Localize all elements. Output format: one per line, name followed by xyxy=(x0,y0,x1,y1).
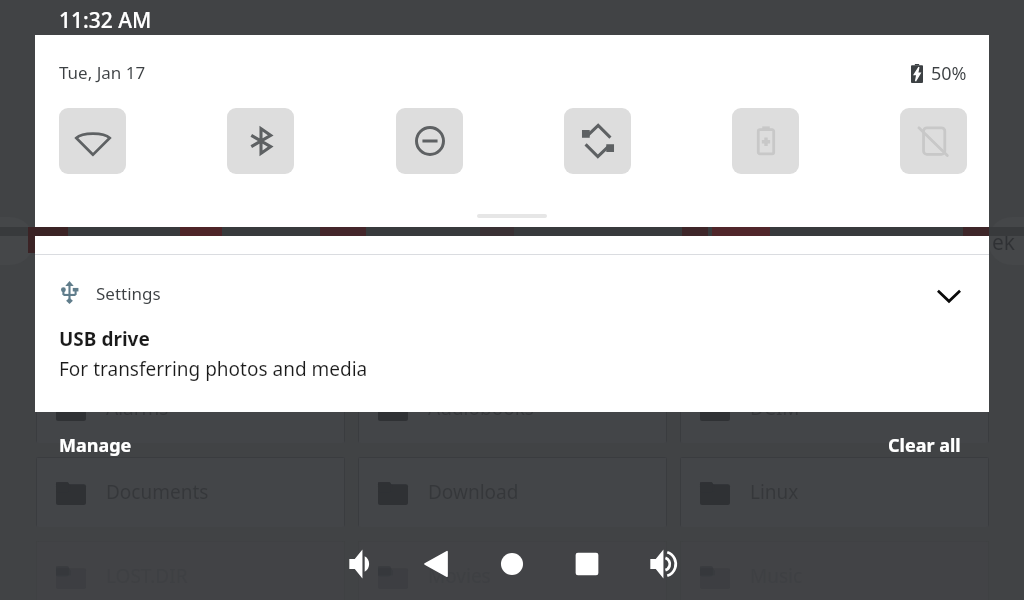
button[interactable]: Volume down xyxy=(337,540,385,588)
staticText: 50% xyxy=(931,61,967,86)
staticText: Movies xyxy=(428,563,491,589)
button[interactable]: Home xyxy=(488,540,536,588)
staticText: Manage xyxy=(59,433,132,458)
button[interactable]: Bluetooth xyxy=(227,108,294,174)
staticText: Clear all xyxy=(888,433,961,458)
button[interactable]: Documents xyxy=(36,457,345,527)
staticText: Download xyxy=(428,479,519,505)
staticText: Linux xyxy=(750,479,799,505)
button[interactable]: Rotation lock xyxy=(900,108,967,174)
button[interactable]: Volume up xyxy=(638,540,686,588)
staticText: Audiobooks xyxy=(428,395,534,421)
button[interactable]: Expand notification xyxy=(925,271,973,319)
button[interactable]: Battery Saver xyxy=(732,108,799,174)
staticText: For transferring photos and media xyxy=(59,356,368,382)
button[interactable]: Settings xyxy=(35,236,989,412)
staticText: DCIM xyxy=(750,395,800,421)
button[interactable]: Alarms xyxy=(36,373,345,443)
button[interactable]: Back xyxy=(412,540,460,588)
button[interactable]: Clear all xyxy=(872,426,977,464)
staticText: 11:32 AM xyxy=(59,6,152,35)
staticText: Settings xyxy=(96,282,161,305)
button[interactable]: Audiobooks xyxy=(358,373,667,443)
button[interactable]: Wi-Fi xyxy=(59,108,126,174)
button[interactable]: Do Not Disturb xyxy=(396,108,463,174)
button[interactable]: Manage xyxy=(43,426,148,464)
button[interactable]: Auto-rotate xyxy=(564,108,631,174)
staticText: Tue, Jan 17 xyxy=(59,61,146,84)
button[interactable]: Movies xyxy=(358,541,667,600)
button[interactable]: Recents xyxy=(563,540,611,588)
button[interactable]: DCIM xyxy=(680,373,989,443)
button[interactable]: Download xyxy=(358,457,667,527)
staticText: Documents xyxy=(106,479,209,505)
staticText: Alarms xyxy=(106,395,169,421)
staticText: USB drive xyxy=(59,326,150,352)
button[interactable]: Linux xyxy=(680,457,989,527)
staticText: ek xyxy=(992,228,1016,257)
